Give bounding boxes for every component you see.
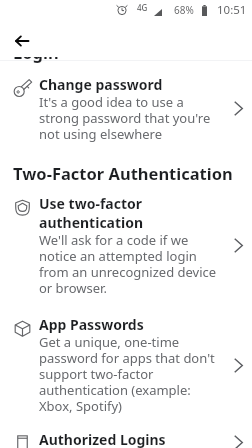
staticText: It's a good idea to use a strong passwor… [39,94,219,142]
staticText: Authorized Logins [39,430,166,448]
staticText: Login [13,57,59,63]
staticText: We'll ask for a code if we notice an att… [39,232,219,296]
staticText: Use two-factor authentication [39,194,219,232]
staticText: App Passwords [39,315,144,334]
staticText: 10:51 [217,2,247,18]
button[interactable]: App Passwords [0,306,252,424]
staticText: 68% [174,3,194,17]
button[interactable]: Change password [0,64,252,152]
staticText: 4G [137,2,148,13]
button[interactable]: Back [15,29,39,53]
staticText: Two-Factor Authentication [13,167,233,184]
button[interactable]: Use two-factor authentication [0,185,252,306]
staticText: Change password [39,75,163,94]
button[interactable]: Authorized Logins [0,424,252,448]
staticText: Get a unique, one-time password for apps… [39,334,219,414]
